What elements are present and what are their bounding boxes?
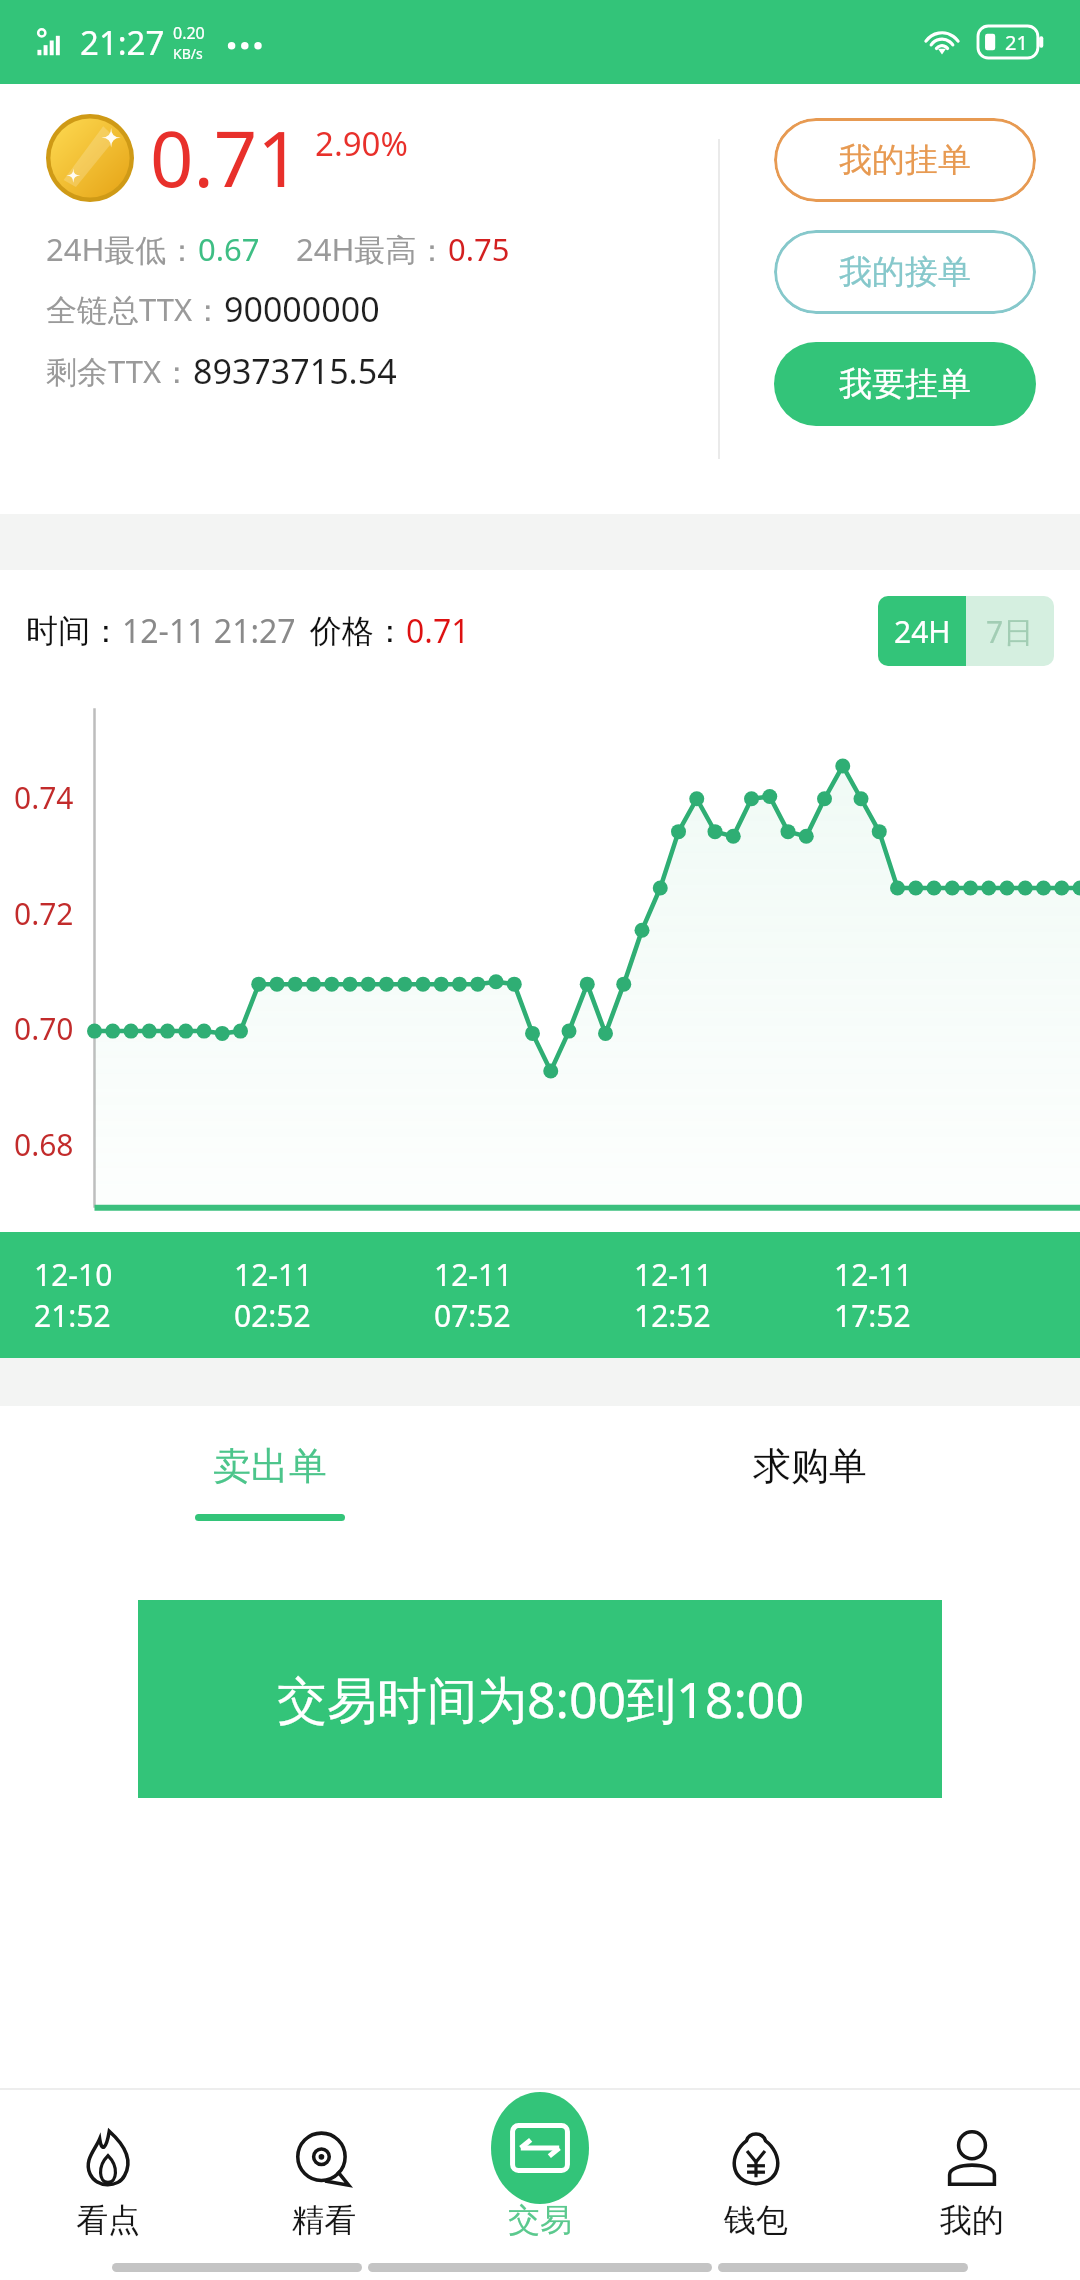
staticText: 求购单 <box>753 1442 867 1490</box>
staticText: 0.72 <box>14 893 74 934</box>
staticText: 24H <box>894 611 951 652</box>
staticText: 我要挂单 <box>839 363 971 405</box>
staticText: 钱包 <box>724 2200 788 2240</box>
staticText: 全链总TTX： <box>46 288 224 330</box>
staticText: 0.75 <box>448 228 510 270</box>
staticText: 价格： <box>310 611 406 651</box>
staticText: 0.74 <box>14 777 74 818</box>
staticText: 07:52 <box>434 1295 511 1336</box>
staticText: 12-11 <box>634 1254 713 1295</box>
button[interactable]: 7日 <box>966 596 1054 666</box>
staticText: 21 <box>1005 29 1028 56</box>
staticText: 0.71 <box>406 609 470 653</box>
button[interactable]: 交易 <box>432 2088 648 2280</box>
button[interactable]: 交易时间为8:00到18:00 <box>138 1600 942 1798</box>
staticText: 21:27 <box>80 20 165 65</box>
staticText: 12-11 <box>234 1254 313 1295</box>
button[interactable]: 我要挂单 <box>774 342 1036 426</box>
button[interactable]: 我的接单 <box>774 230 1036 314</box>
staticText: 24H最低： <box>46 228 198 270</box>
staticText: 时间： <box>26 611 122 651</box>
staticText: 剩余TTX： <box>46 350 193 392</box>
staticText: 21:52 <box>34 1295 111 1336</box>
staticText: 交易 <box>508 2200 572 2240</box>
staticText: 0.70 <box>14 1008 74 1049</box>
button[interactable]: 精看 <box>216 2088 432 2280</box>
staticText: KB/s <box>173 44 203 63</box>
staticText: 7日 <box>986 611 1034 652</box>
staticText: 0.20 <box>173 22 205 44</box>
staticText: 我的 <box>940 2200 1004 2240</box>
staticText: 89373715.54 <box>193 348 397 394</box>
button[interactable]: 卖出单 <box>0 1406 540 1556</box>
staticText: 12-10 <box>34 1254 113 1295</box>
staticText: 12-11 <box>834 1254 913 1295</box>
staticText: 17:52 <box>834 1295 911 1336</box>
staticText: 90000000 <box>224 286 380 332</box>
button[interactable]: 24H <box>878 596 966 666</box>
staticText: 交易时间为8:00到18:00 <box>277 1665 804 1733</box>
staticText: 12:52 <box>634 1295 711 1336</box>
staticText: 0.71 <box>150 106 301 210</box>
staticText: 我的接单 <box>839 251 971 293</box>
staticText: 12-11 <box>434 1254 513 1295</box>
staticText: 24H最高： <box>296 228 448 270</box>
staticText: 我的挂单 <box>839 139 971 181</box>
button[interactable]: 求购单 <box>540 1406 1080 1556</box>
staticText: 精看 <box>292 2200 356 2240</box>
staticText: 12-11 21:27 <box>122 609 296 653</box>
staticText: 看点 <box>76 2200 140 2240</box>
button[interactable]: 我的 <box>864 2088 1080 2280</box>
button[interactable]: 我的挂单 <box>774 118 1036 202</box>
button[interactable]: 钱包 <box>648 2088 864 2280</box>
staticText: 卖出单 <box>213 1442 327 1490</box>
staticText: 2.90% <box>315 121 408 166</box>
staticText: 02:52 <box>234 1295 311 1336</box>
staticText: 0.67 <box>198 228 260 270</box>
button[interactable]: 看点 <box>0 2088 216 2280</box>
button[interactable]: 交易 <box>491 2092 589 2204</box>
staticText: 0.68 <box>14 1124 74 1165</box>
